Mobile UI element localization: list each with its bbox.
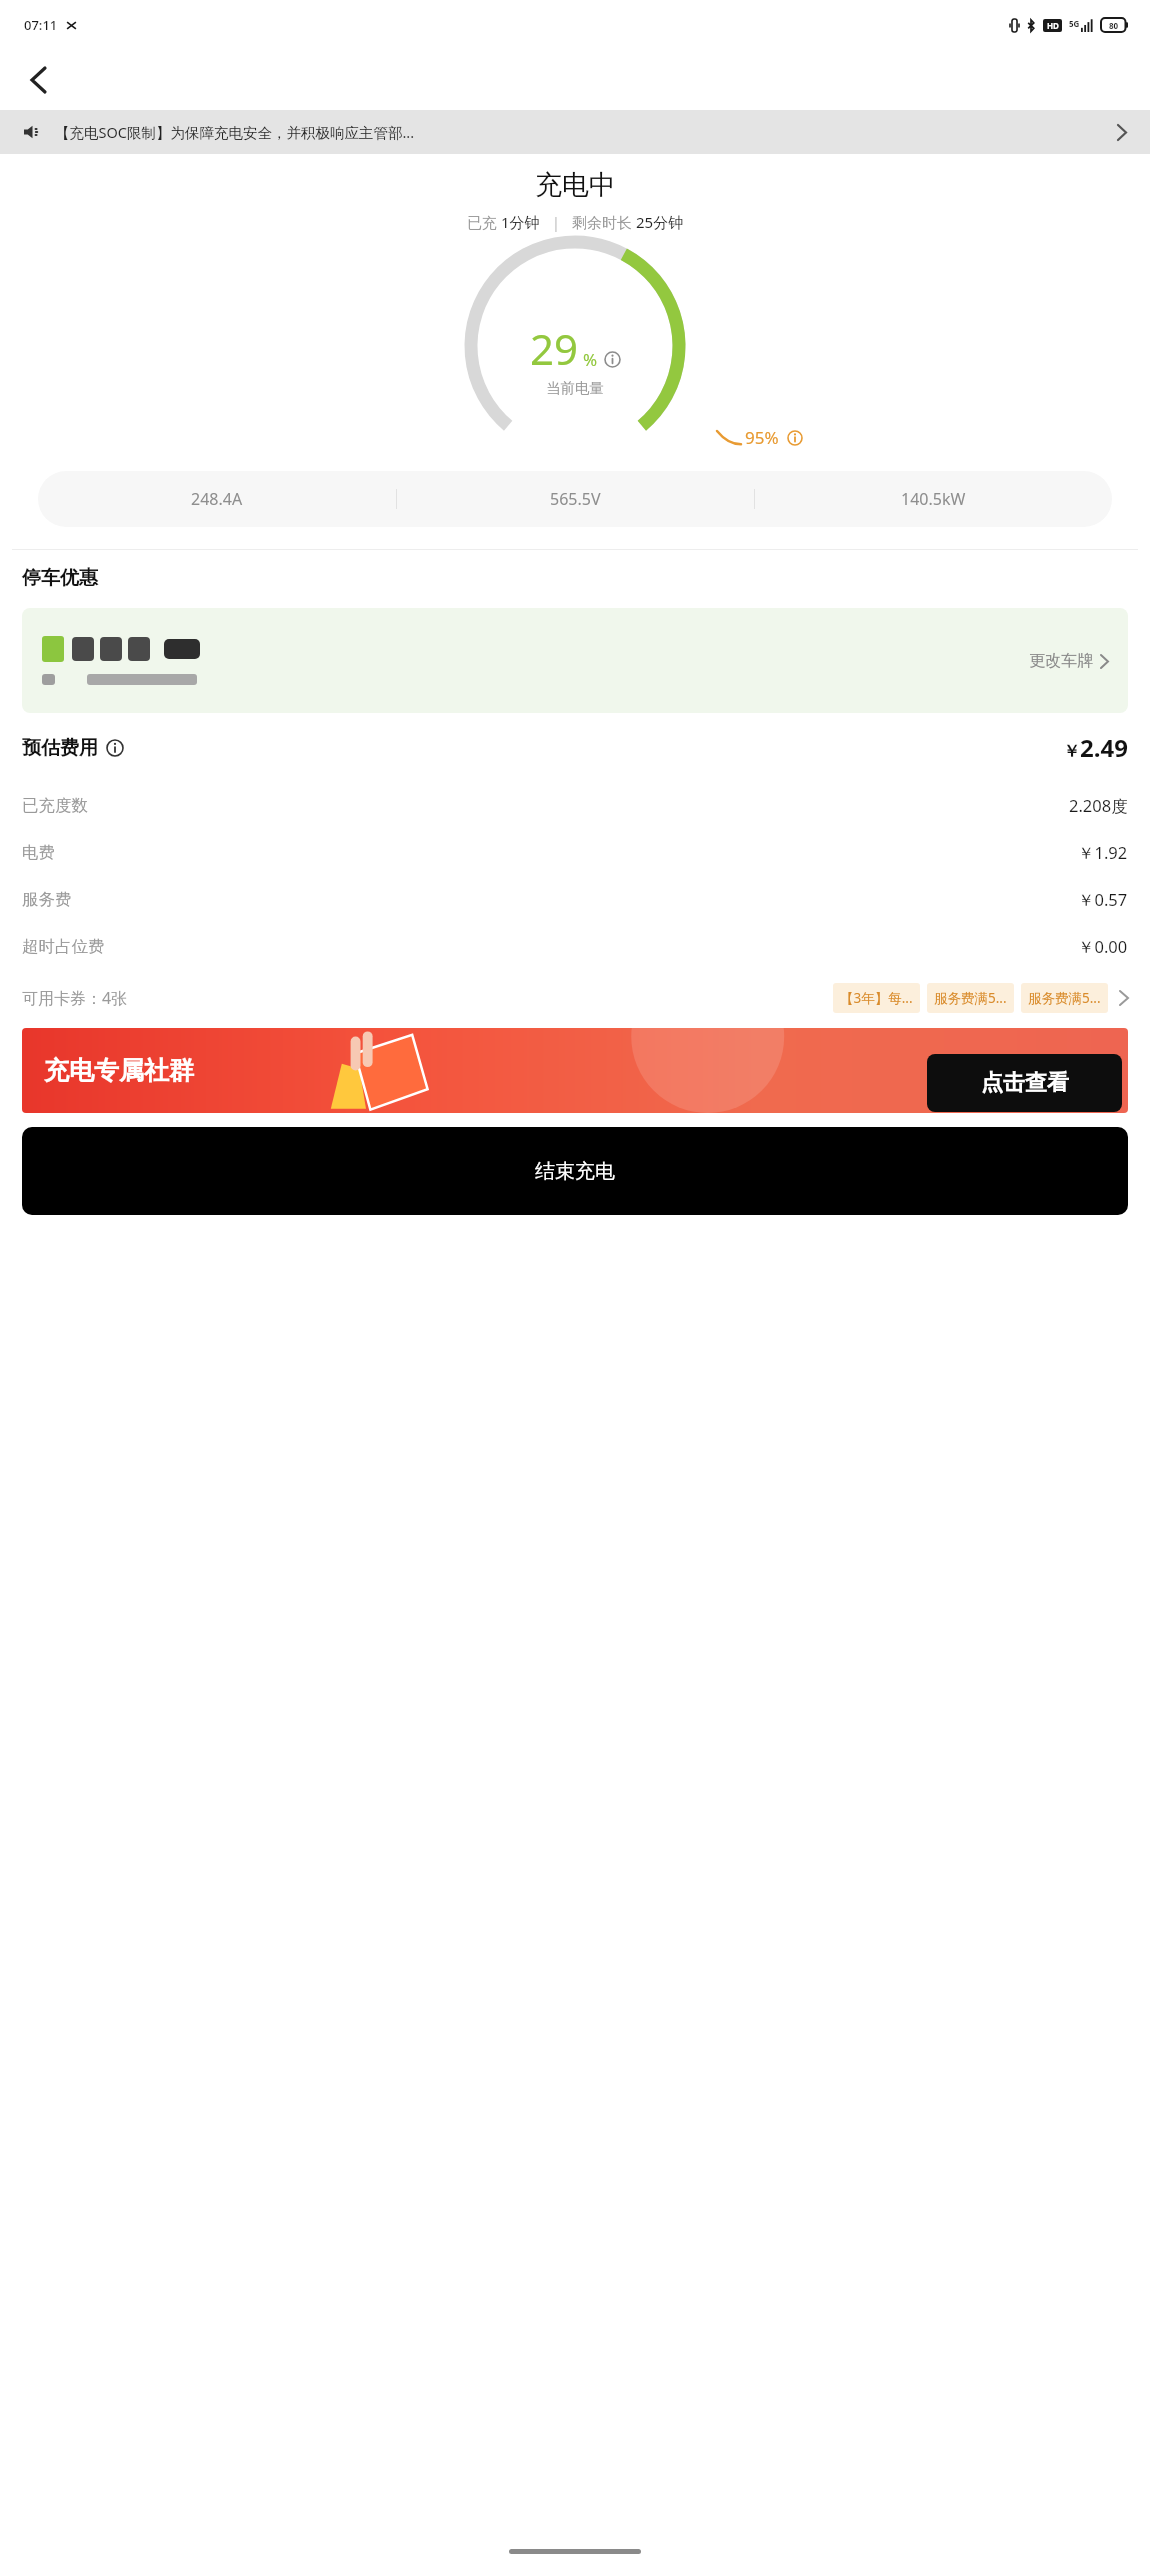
staticText: 5G	[1069, 18, 1080, 29]
button[interactable]: 充电上限说明	[787, 430, 803, 446]
button[interactable]: 电量说明	[604, 351, 621, 368]
button[interactable]: 费用说明	[106, 739, 124, 757]
button[interactable]: Back	[14, 56, 62, 104]
button[interactable]: 可用卡券：4张	[22, 978, 1128, 1018]
staticText: 电费	[22, 842, 55, 863]
button[interactable]: 服务费满5...	[927, 983, 1014, 1013]
staticText: ￥0.00	[1078, 935, 1128, 958]
staticText: ￥0.57	[1078, 888, 1128, 911]
button[interactable]: 【3年】每...	[833, 983, 920, 1013]
staticText: 2.208度	[1069, 794, 1128, 817]
button[interactable]: 点击查看	[927, 1054, 1122, 1112]
button[interactable]: 服务费满5...	[1021, 983, 1108, 1013]
staticText: 点击查看	[981, 1069, 1069, 1097]
staticText: 当前电量	[546, 379, 604, 397]
staticText: 超时占位费	[22, 936, 105, 957]
staticText: %	[583, 348, 598, 371]
staticText: 248.4A	[191, 488, 243, 510]
staticText: 服务费满5...	[934, 989, 1007, 1007]
staticText: 预估费用	[22, 736, 98, 760]
staticText: 25分钟	[636, 212, 684, 232]
staticText: |	[540, 212, 572, 232]
staticText: 充电专属社群	[44, 1055, 194, 1086]
staticText: 【3年】每...	[840, 989, 913, 1007]
staticText: 充电中	[535, 168, 616, 202]
staticText: 【充电SOC限制】为保障充电安全，并积极响应主管部...	[55, 122, 1110, 142]
staticText: 2.49	[1080, 731, 1128, 764]
staticText: 80	[1109, 20, 1119, 31]
staticText: 140.5kW	[901, 488, 966, 510]
staticText: HD	[1047, 20, 1059, 31]
staticText: ￥	[1063, 741, 1080, 762]
staticText: 已充度数	[22, 795, 88, 816]
staticText: 服务费	[22, 889, 72, 910]
staticText: ￥1.92	[1078, 841, 1128, 864]
staticText: 07:11	[24, 16, 58, 34]
button[interactable]: 【充电SOC限制】为保障充电安全，并积极响应主管部...	[0, 110, 1150, 154]
button[interactable]: 充电专属社群	[22, 1028, 1128, 1113]
staticText: 可用卡券：4张	[22, 987, 128, 1009]
button[interactable]: 更改车牌	[22, 608, 1128, 713]
staticText: 565.5V	[550, 488, 601, 510]
staticText: 更改车牌	[1029, 651, 1093, 671]
staticText: 结束充电	[535, 1159, 615, 1184]
staticText: 29	[530, 320, 579, 377]
staticText: 停车优惠	[22, 566, 98, 590]
button[interactable]: 结束充电	[22, 1127, 1128, 1215]
staticText: 剩余时长	[572, 212, 636, 232]
staticText: 服务费满5...	[1028, 989, 1101, 1007]
staticText: 95%	[745, 426, 779, 449]
staticText: 已充	[467, 212, 501, 232]
staticText: 1分钟	[501, 212, 540, 232]
